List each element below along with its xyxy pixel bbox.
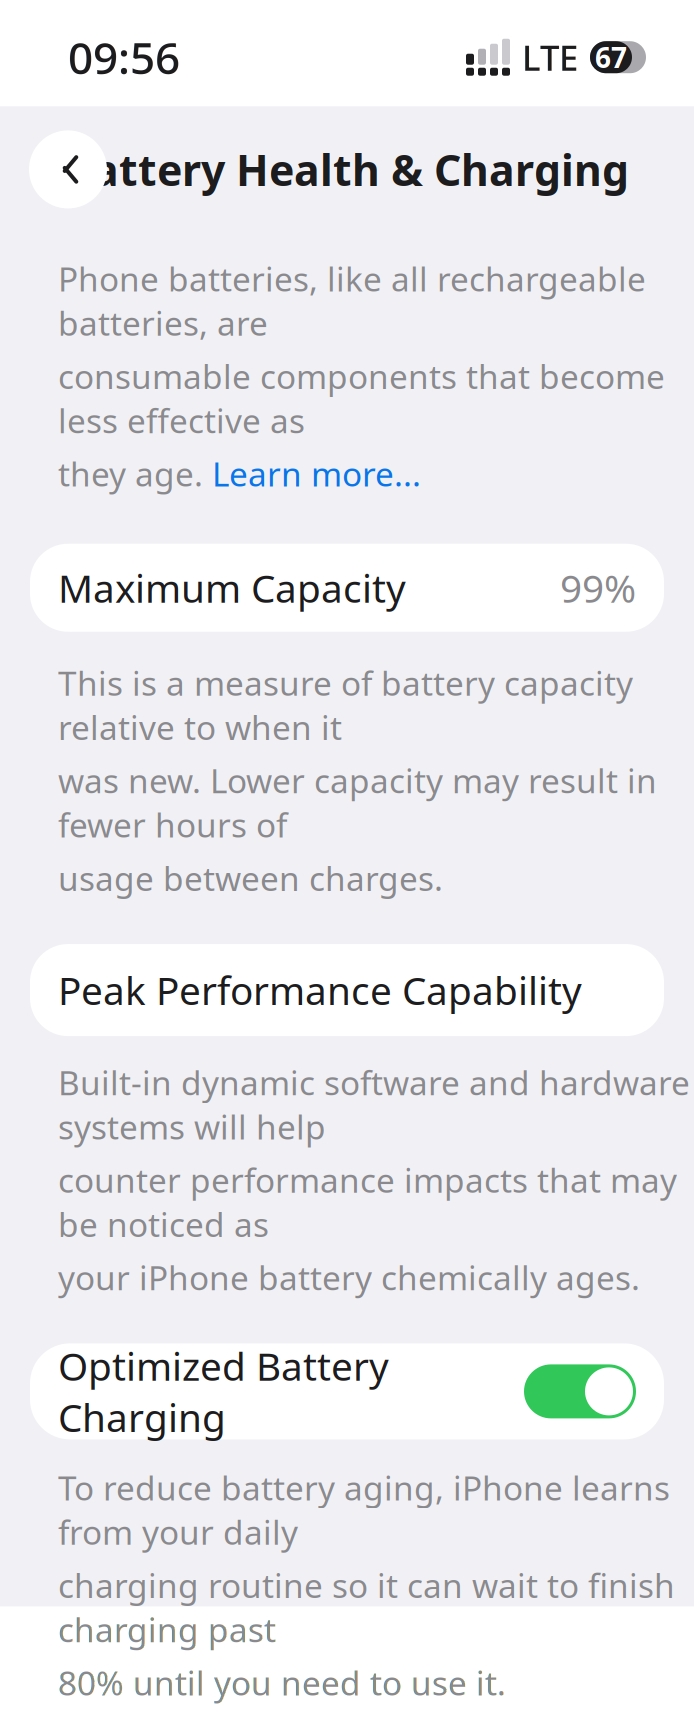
staticText: usage between charges. <box>58 856 443 900</box>
staticText: Maximum Capacity <box>58 562 406 613</box>
staticText: Built-in dynamic software and hardware s… <box>58 1060 690 1149</box>
staticText: they age. <box>58 451 212 496</box>
button[interactable]: Optimized Battery Charging <box>30 1343 664 1439</box>
button[interactable]: Back <box>29 130 107 208</box>
staticText: 99% <box>560 562 636 613</box>
staticText: 80% until you need to use it. <box>58 1660 506 1705</box>
button[interactable]: Peak Performance Capability <box>30 944 664 1036</box>
staticText: LTE <box>522 34 578 80</box>
staticText: Optimized Battery Charging <box>58 1340 389 1443</box>
staticText: Learn more... <box>212 451 421 496</box>
button[interactable]: Maximum Capacity <box>30 544 664 632</box>
staticText: This is a measure of battery capacity re… <box>58 661 633 749</box>
staticText: Peak Performance Capability <box>58 964 582 1016</box>
button[interactable]: Learn more... <box>212 451 421 496</box>
staticText: Phone batteries, like all rechargeable b… <box>58 256 646 345</box>
staticText: 09:56 <box>68 28 180 86</box>
staticText: was new. Lower capacity may result in fe… <box>58 758 657 847</box>
staticText: counter performance impacts that may be … <box>58 1158 677 1246</box>
staticText: Battery Health & Charging <box>65 141 629 198</box>
staticText: consumable components that become less e… <box>58 354 665 442</box>
staticText: To reduce battery aging, iPhone learns f… <box>58 1465 670 1554</box>
staticText: charging routine so it can wait to finis… <box>58 1563 675 1651</box>
staticText: 67 <box>595 39 627 76</box>
staticText: your iPhone battery chemically ages. <box>58 1255 640 1299</box>
